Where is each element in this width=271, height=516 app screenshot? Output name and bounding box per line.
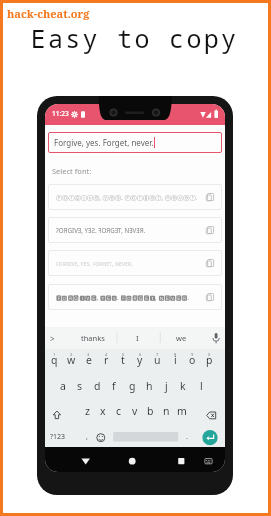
button[interactable]: q	[46, 352, 62, 368]
button[interactable]: y	[132, 352, 148, 368]
staticText: .	[186, 432, 188, 442]
staticText: Easy to copy	[0, 21, 270, 55]
button[interactable]: e	[81, 352, 97, 368]
staticText: e	[86, 353, 92, 367]
button[interactable]: p	[201, 352, 217, 368]
button[interactable]: Ⓕⓞⓡⓖⓘⓥⓔ, ⓨⓔⓢ. Ⓕⓞⓡⓖⓔⓣ, ⓝⓔⓥⓔⓡ.	[48, 184, 222, 210]
staticText: u	[154, 353, 161, 367]
button[interactable]: Forgive, yes. Forget, never.	[48, 132, 222, 153]
button[interactable]: v	[127, 403, 143, 419]
staticText: 5	[122, 352, 125, 357]
staticText: >	[50, 333, 55, 344]
staticText: 11:23	[52, 109, 69, 118]
staticText: n	[163, 404, 170, 418]
staticText: q	[51, 353, 58, 367]
button[interactable]: ꜰᴏʀɢɪᴠᴇ, ʏᴇs. ꜰᴏʀɢᴇᴛ, ɴᴇᴠᴇʀ.	[48, 250, 222, 276]
button[interactable]: d	[89, 378, 105, 394]
button[interactable]: j	[158, 378, 174, 394]
staticText: ,	[86, 432, 88, 442]
staticText: f	[112, 379, 116, 393]
staticText: r	[104, 353, 109, 367]
staticText: k	[180, 379, 186, 393]
staticText: 3	[87, 352, 90, 357]
staticText: j	[165, 379, 168, 393]
button[interactable]: t	[115, 352, 131, 368]
staticText: h	[146, 379, 153, 393]
button[interactable]: n	[158, 403, 174, 419]
button[interactable]: l	[193, 378, 209, 394]
staticText: 8	[174, 352, 177, 357]
staticText: t	[121, 353, 125, 367]
button[interactable]: w	[63, 352, 79, 368]
staticText: w	[67, 353, 76, 367]
button[interactable]: r	[98, 352, 114, 368]
staticText: g	[129, 379, 136, 393]
staticText: 🅵🅾🆁🅶🅸🆅🅴, 🆈🅴🆂. 🅵🅾🆁🅶🅴🆃, 🅽🅴🆅🅴🆁.	[56, 293, 189, 301]
staticText: o	[189, 353, 196, 367]
button[interactable]: 🅵🅾🆁🅶🅸🆅🅴, 🆈🅴🆂. 🅵🅾🆁🅶🅴🆃, 🅽🅴🆅🅴🆁.	[48, 284, 222, 310]
button[interactable]: k	[175, 378, 191, 394]
button[interactable]: m	[174, 403, 190, 419]
button[interactable]: h	[141, 378, 157, 394]
staticText: ?123	[50, 432, 66, 442]
button[interactable]: o	[184, 352, 200, 368]
staticText: Ⓕⓞⓡⓖⓘⓥⓔ, ⓨⓔⓢ. Ⓕⓞⓡⓖⓔⓣ, ⓝⓔⓥⓔⓡ.	[56, 193, 198, 201]
staticText: ꜰᴏʀɢɪᴠᴇ, ʏᴇs. ꜰᴏʀɢᴇᴛ, ɴᴇᴠᴇʀ.	[56, 259, 133, 267]
button[interactable]: c	[111, 403, 127, 419]
staticText: 6	[139, 352, 142, 357]
staticText: p	[206, 353, 213, 367]
staticText: 9	[191, 352, 194, 357]
button[interactable]: a	[55, 378, 71, 394]
staticText: 1	[53, 352, 56, 357]
button[interactable]: i	[167, 352, 183, 368]
staticText: d	[94, 379, 101, 393]
button[interactable]: s	[72, 378, 88, 394]
staticText: thanks	[81, 333, 105, 343]
button[interactable]: ɁOЯGIVƎ, YƎƧ. ꟻOЯGƎT, NƎVƎЯ.	[48, 217, 222, 243]
staticText: 0	[208, 352, 211, 357]
staticText: we	[176, 333, 187, 343]
button[interactable]: b	[142, 403, 158, 419]
staticText: b	[147, 404, 154, 418]
button[interactable]: x	[95, 403, 111, 419]
button[interactable]: z	[79, 403, 95, 419]
staticText: 4	[105, 352, 108, 357]
button[interactable]: u	[149, 352, 165, 368]
staticText: v	[132, 404, 138, 418]
staticText: 7	[156, 352, 159, 357]
staticText: 2	[70, 352, 73, 357]
staticText: s	[77, 379, 83, 393]
staticText: z	[85, 404, 90, 418]
staticText: c	[116, 404, 122, 418]
button[interactable]: f	[106, 378, 122, 394]
staticText: y	[137, 353, 143, 367]
staticText: i	[174, 353, 177, 367]
staticText: Forgive, yes. Forget, never.	[54, 137, 154, 148]
staticText: Select font:	[52, 166, 92, 176]
staticText: hack-cheat.org	[7, 6, 90, 21]
staticText: l	[200, 379, 203, 393]
staticText: I	[136, 333, 139, 343]
staticText: x	[100, 404, 106, 418]
staticText: ɁOЯGIVƎ, YƎƧ. ꟻOЯGƎT, NƎVƎЯ.	[56, 226, 146, 234]
button[interactable]: g	[124, 378, 140, 394]
staticText: m	[177, 404, 187, 418]
staticText: a	[60, 379, 66, 393]
